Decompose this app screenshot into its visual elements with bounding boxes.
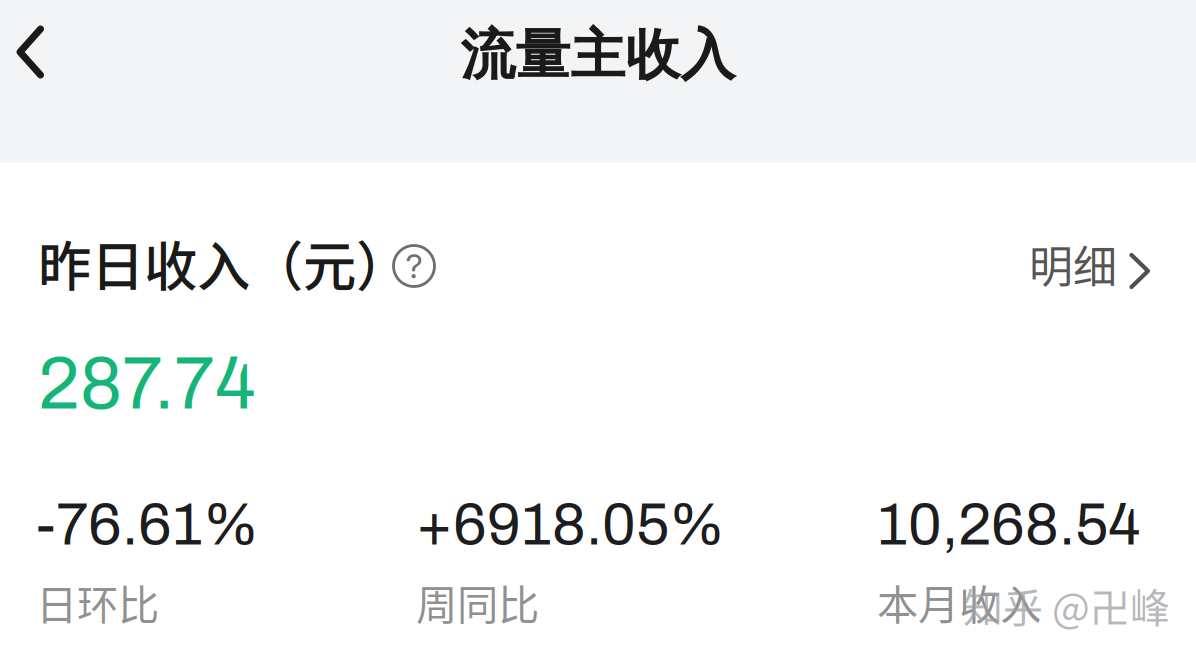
staticText: 10,268.54 [877, 493, 1141, 557]
staticText: 流量主收入 [460, 21, 735, 89]
staticText: 知乎 @卍峰 [963, 576, 1170, 634]
staticText: 昨日收入（元） [38, 224, 409, 302]
staticText: -76.61% [36, 493, 259, 557]
staticText: 明细 [1029, 232, 1117, 296]
staticText: +6918.05% [416, 493, 725, 557]
button[interactable]: About yesterday's income [391, 243, 437, 289]
staticText: 日环比 [36, 572, 159, 632]
button[interactable]: Back [0, 5, 61, 99]
button[interactable]: 明细 [1029, 238, 1155, 290]
staticText: ? [405, 246, 422, 286]
staticText: 周同比 [416, 572, 539, 632]
staticText: 287.74 [38, 344, 256, 424]
staticText: 本月收入 [877, 572, 1041, 632]
